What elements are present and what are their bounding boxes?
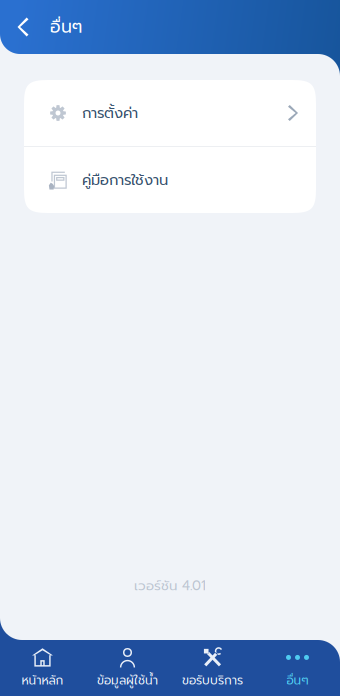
staticText: เวอร์ชัน 4.01 — [134, 576, 206, 596]
button[interactable]: หน้าหลัก — [0, 640, 85, 696]
staticText: หน้าหลัก — [21, 671, 63, 689]
staticText: ข้อมูลผู้ใช้น้ำ — [97, 671, 158, 689]
button[interactable]: Back — [0, 4, 46, 50]
staticText: การตั้งค่า — [82, 102, 138, 124]
staticText: อื่นๆ — [286, 671, 308, 689]
staticText: ขอรับบริการ — [182, 671, 243, 689]
staticText: คู่มือการใช้งาน — [82, 169, 168, 191]
button[interactable]: คู่มือการใช้งาน — [24, 147, 316, 213]
staticText: อื่นๆ — [50, 14, 82, 40]
button[interactable]: ข้อมูลผู้ใช้น้ำ — [85, 640, 170, 696]
button[interactable]: ขอรับบริการ — [170, 640, 255, 696]
button[interactable]: การตั้งค่า — [24, 80, 316, 146]
button[interactable]: อื่นๆ — [255, 640, 340, 696]
